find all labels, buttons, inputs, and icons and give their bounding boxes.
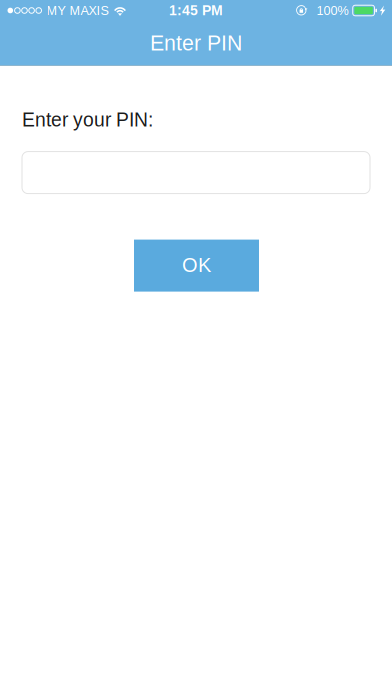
staticText: 100% <box>317 3 349 18</box>
staticText: Enter PIN <box>150 31 242 55</box>
staticText: 1:45 PM <box>169 3 223 18</box>
button[interactable]: OK <box>134 240 259 292</box>
button[interactable]: PIN <box>22 152 370 194</box>
staticText: MY MAXIS <box>46 3 108 18</box>
staticText: OK <box>182 254 211 276</box>
staticText: Enter your PIN: <box>22 109 153 131</box>
